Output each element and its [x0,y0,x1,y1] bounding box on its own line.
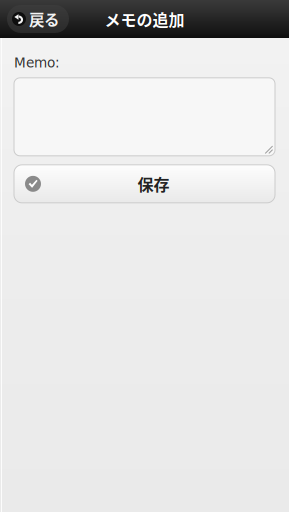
staticText: 保存 [137,172,169,195]
staticText: 戻る [29,8,59,30]
button[interactable]: 保存 [14,165,275,203]
button[interactable]: 戻る [7,5,69,33]
staticText: Memo: [14,55,60,71]
staticText: メモの追加 [104,7,184,31]
